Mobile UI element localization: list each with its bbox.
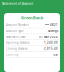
staticText: 31 Mar 2024 xyxy=(39,35,58,39)
staticText: Currency xyxy=(6,53,18,56)
staticText: •••• 4821 xyxy=(45,23,58,27)
staticText: Savings xyxy=(48,29,58,33)
staticText: Statement of Account xyxy=(2,2,33,5)
staticText: Account Type xyxy=(6,29,24,33)
staticText: Opening Balance xyxy=(6,41,30,44)
staticText: Closing Balance xyxy=(6,47,28,50)
staticText: Statement Date xyxy=(6,35,26,39)
staticText: 2,815.40 xyxy=(44,47,58,50)
staticText: USD xyxy=(53,53,58,56)
staticText: 1,240.00 xyxy=(44,41,58,44)
staticText: Account Number xyxy=(6,23,29,27)
staticText: GreenBank xyxy=(21,15,43,20)
